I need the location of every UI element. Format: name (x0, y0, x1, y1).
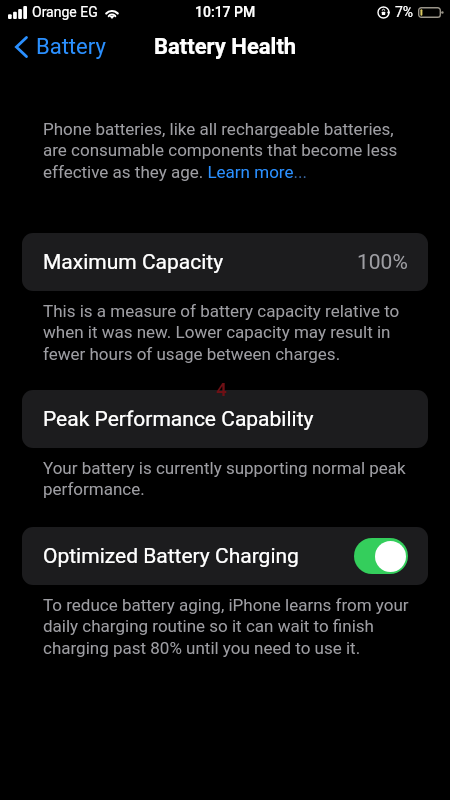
staticText: 4 (216, 378, 227, 400)
staticText: 10:17 PM (195, 4, 256, 20)
staticText: Optimized Battery Charging (43, 544, 299, 569)
staticText: This is a measure of battery capacity re… (43, 301, 415, 365)
staticText: Battery (36, 34, 106, 60)
staticText: 7% (395, 4, 414, 20)
button[interactable]: Battery (0, 31, 114, 63)
staticText: Peak Performance Capability (43, 407, 314, 432)
staticText: Battery Health (154, 34, 297, 60)
button[interactable]: Maximum Capacity (22, 233, 428, 291)
staticText: Your battery is currently supporting nor… (43, 458, 415, 500)
staticText: Maximum Capacity (43, 250, 224, 275)
button[interactable]: Peak Performance Capability (22, 390, 428, 448)
staticText: 100% (357, 250, 408, 275)
staticText: Phone batteries, like all rechargeable b… (43, 119, 415, 183)
button[interactable]: Optimized Battery Charging (22, 527, 428, 585)
button[interactable]: Optimized Battery Charging toggle (354, 538, 408, 574)
staticText: To reduce battery aging, iPhone learns f… (43, 595, 415, 659)
staticText: Orange EG (32, 4, 98, 20)
